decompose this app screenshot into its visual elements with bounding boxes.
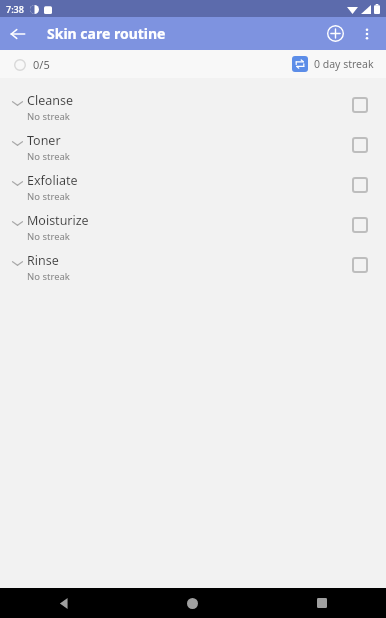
staticText: Skin care routine (47, 24, 166, 43)
button[interactable]: Expand Moisturize (9, 215, 25, 231)
staticText: No streak (27, 230, 70, 243)
button[interactable]: More options (352, 19, 382, 49)
staticText: Toner (27, 132, 61, 149)
staticText: No streak (27, 270, 70, 283)
button[interactable]: Expand Exfoliate (0, 170, 386, 210)
button[interactable]: Mark Toner complete (348, 133, 372, 157)
button[interactable]: Expand Cleanse (0, 90, 386, 130)
staticText: 0/5 (33, 57, 50, 72)
button[interactable]: Mark Rinse complete (348, 253, 372, 277)
button[interactable]: Recent apps (257, 588, 386, 618)
button[interactable]: Home (128, 588, 257, 618)
button[interactable]: Mark Moisturize complete (348, 213, 372, 237)
button[interactable]: Expand Rinse (0, 250, 386, 290)
button[interactable]: Expand Exfoliate (9, 175, 25, 191)
button[interactable]: Back (0, 17, 36, 50)
staticText: Exfoliate (27, 172, 78, 189)
button[interactable]: Expand Moisturize (0, 210, 386, 250)
staticText: No streak (27, 150, 70, 163)
staticText: Rinse (27, 252, 59, 269)
button[interactable]: Expand Toner (9, 135, 25, 151)
staticText: No streak (27, 110, 70, 123)
staticText: Cleanse (27, 92, 73, 109)
staticText: No streak (27, 190, 70, 203)
button[interactable]: Expand Rinse (9, 255, 25, 271)
button[interactable]: Back (0, 588, 128, 618)
button[interactable]: Expand Toner (0, 130, 386, 170)
staticText: Moisturize (27, 212, 89, 229)
button[interactable]: Expand Cleanse (9, 95, 25, 111)
staticText: 7:38 (6, 3, 24, 15)
staticText: 0 day streak (314, 57, 374, 71)
button[interactable]: Add habit (318, 17, 352, 50)
button[interactable]: Mark Cleanse complete (348, 93, 372, 117)
button[interactable]: Mark Exfoliate complete (348, 173, 372, 197)
